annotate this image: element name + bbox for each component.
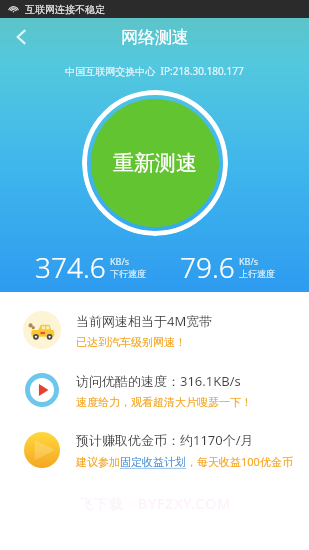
staticText: 速度给力，观看超清大片嗖瑟一下！ (76, 395, 252, 409)
staticText: 上行速度 (239, 268, 275, 279)
staticText: 互联网连接不稳定 (25, 3, 105, 16)
staticText: 当前网速相当于4M宽带 (76, 312, 213, 330)
staticText: 预计赚取优金币：约1170个/月 (76, 431, 254, 449)
staticText: KB/s (239, 255, 259, 267)
other: Wi-Fi (8, 4, 19, 15)
button[interactable]: Play video speed (0, 366, 309, 414)
staticText: 79.6 (180, 248, 235, 286)
other: Car speed badge (23, 311, 61, 349)
staticText: 中国互联网交换中心 IP:218.30.180.177 (0, 64, 309, 78)
staticText: 建议参加 (76, 455, 120, 469)
staticText: 访问优酷的速度：316.1KB/s (76, 372, 241, 390)
staticText: ，每天收益100优金币 (186, 454, 293, 469)
button[interactable]: Coin earnings (0, 426, 309, 474)
staticText: 374.6 (35, 248, 106, 286)
button[interactable]: Car speed badge (0, 306, 309, 354)
staticText: 重新测速 (113, 150, 197, 176)
other: Play video speed (25, 373, 59, 407)
staticText: KB/s (110, 255, 130, 267)
staticText: 飞下载 · BYFZXY.COM (79, 494, 231, 513)
staticText: 固定收益计划 (120, 455, 186, 469)
other: Coin earnings (24, 432, 60, 468)
button[interactable]: 重新测速 (82, 90, 228, 236)
staticText: 已达到汽车级别网速！ (76, 335, 186, 349)
staticText: 下行速度 (110, 268, 146, 279)
staticText: 网络测速 (121, 27, 189, 48)
button[interactable]: Back (0, 18, 44, 56)
